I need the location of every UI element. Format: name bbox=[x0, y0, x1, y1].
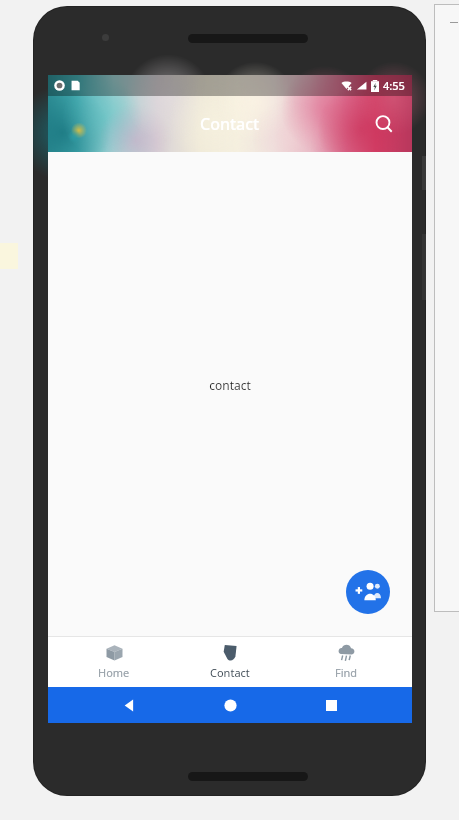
button[interactable]: Recents bbox=[311, 687, 351, 723]
staticText: Contact bbox=[210, 665, 250, 680]
button[interactable]: Add contact bbox=[346, 570, 390, 614]
staticText: Contact bbox=[200, 113, 260, 135]
staticText: Home bbox=[98, 665, 130, 680]
button[interactable]: Search bbox=[366, 106, 402, 142]
button[interactable]: Back bbox=[109, 687, 149, 723]
staticText: Find bbox=[335, 665, 358, 680]
button[interactable]: Home bbox=[64, 636, 164, 687]
staticText: 4:55 bbox=[383, 78, 405, 93]
button[interactable]: Home bbox=[210, 687, 250, 723]
button[interactable]: Contact bbox=[180, 636, 280, 687]
staticText: contact bbox=[209, 377, 251, 393]
button[interactable]: Find bbox=[296, 636, 396, 687]
